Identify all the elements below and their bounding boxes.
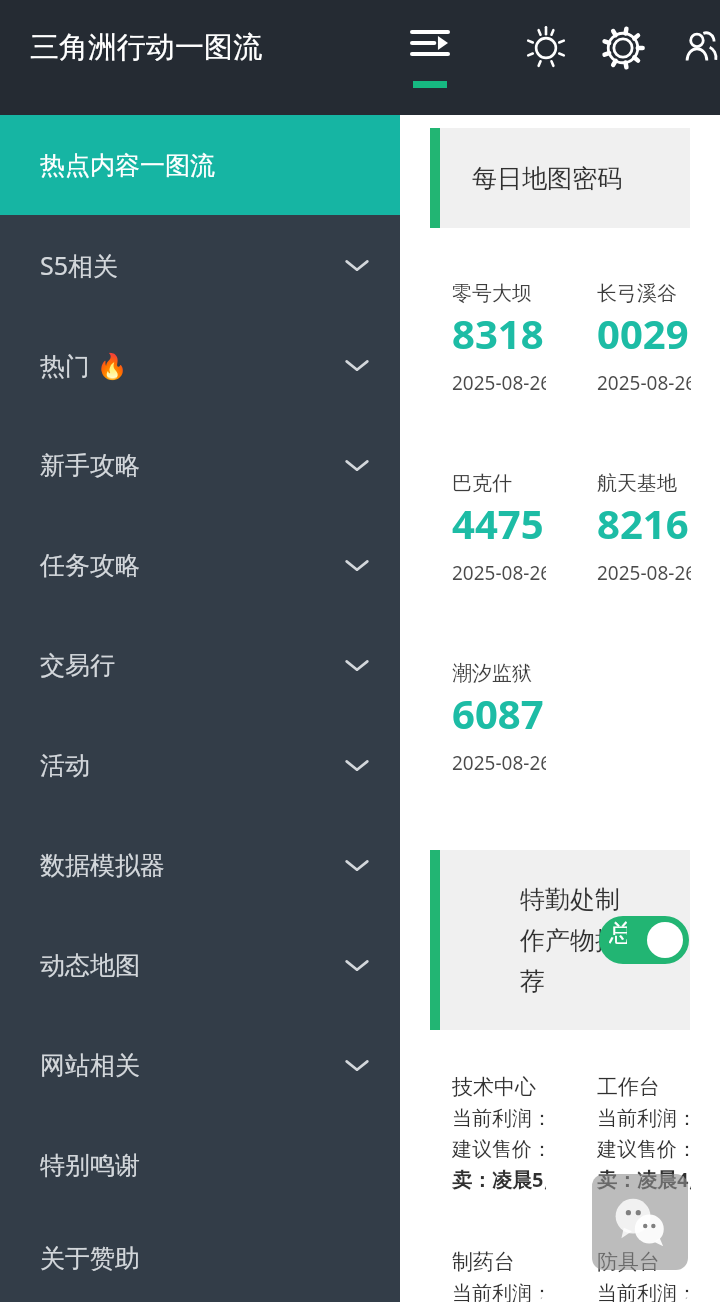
- staticText: 防具台: [597, 1249, 660, 1275]
- button[interactable]: 关于赞助: [0, 1215, 400, 1302]
- button[interactable]: Menu: [400, 18, 460, 98]
- staticText: 当前利润：2: [597, 1104, 691, 1131]
- staticText: 总利润: [609, 918, 627, 964]
- staticText: 2025-08-26: [597, 370, 691, 396]
- button[interactable]: 动态地图: [0, 915, 400, 1015]
- button[interactable]: 数据模拟器: [0, 815, 400, 915]
- staticText: 热门 🔥: [40, 348, 344, 382]
- staticText: 航天基地: [597, 471, 677, 496]
- button[interactable]: 防具台: [575, 1235, 691, 1302]
- button[interactable]: 网站相关: [0, 1015, 400, 1115]
- button[interactable]: 新手攻略: [0, 415, 400, 515]
- staticText: 任务攻略: [40, 550, 344, 581]
- staticText: 三角洲行动一图流: [30, 29, 262, 66]
- button[interactable]: WeChat: [592, 1174, 688, 1270]
- button[interactable]: 制药台: [430, 1235, 546, 1302]
- button[interactable]: 每日地图密码: [430, 128, 690, 228]
- staticText: 每日地图密码: [472, 163, 622, 194]
- staticText: 特别鸣谢: [40, 1150, 370, 1181]
- staticText: 动态地图: [40, 950, 344, 981]
- staticText: 新手攻略: [40, 450, 344, 481]
- staticText: 网站相关: [40, 1050, 344, 1081]
- staticText: 4475: [452, 496, 544, 550]
- button[interactable]: 热门 🔥: [0, 315, 400, 415]
- staticText: 卖：凌晨4点: [597, 1166, 691, 1193]
- staticText: 6087: [452, 686, 544, 740]
- staticText: 8318: [452, 306, 544, 360]
- staticText: 建议售价：10: [452, 1135, 546, 1162]
- staticText: 长弓溪谷: [597, 281, 677, 306]
- button[interactable]: 任务攻略: [0, 515, 400, 615]
- button[interactable]: 特勤处制作产物推荐: [430, 850, 690, 1030]
- button[interactable]: 特别鸣谢: [0, 1115, 400, 1215]
- staticText: S5相关: [40, 248, 344, 282]
- staticText: 活动: [40, 750, 344, 781]
- button[interactable]: 航天基地: [575, 453, 691, 608]
- staticText: 巴克什: [452, 471, 512, 496]
- staticText: 交易行: [40, 650, 344, 681]
- staticText: 8216: [597, 496, 689, 550]
- staticText: 当前利润：16: [597, 1279, 691, 1302]
- staticText: 当前利润：16: [452, 1279, 546, 1302]
- button[interactable]: Account: [674, 22, 720, 74]
- staticText: 2025-08-26: [452, 560, 546, 586]
- button[interactable]: 交易行: [0, 615, 400, 715]
- staticText: 特勤处制作产物推荐: [520, 884, 625, 997]
- button[interactable]: 活动: [0, 715, 400, 815]
- staticText: 技术中心: [452, 1074, 536, 1100]
- button[interactable]: Settings: [597, 22, 649, 74]
- staticText: 2025-08-26: [452, 750, 546, 776]
- staticText: 热点内容一图流: [40, 150, 370, 181]
- button[interactable]: Brightness: [520, 22, 572, 74]
- button[interactable]: 总利润: [599, 916, 689, 964]
- button[interactable]: 巴克什: [430, 453, 546, 608]
- button[interactable]: 潮汐监狱: [430, 643, 546, 798]
- staticText: 2025-08-26: [452, 370, 546, 396]
- button[interactable]: 热点内容一图流: [0, 115, 400, 215]
- staticText: 卖：凌晨5点: [452, 1166, 546, 1193]
- button[interactable]: 长弓溪谷: [575, 263, 691, 418]
- staticText: 当前利润：4: [452, 1104, 546, 1131]
- button[interactable]: S5相关: [0, 215, 400, 315]
- button[interactable]: 技术中心: [430, 1060, 546, 1203]
- button[interactable]: 工作台: [575, 1060, 691, 1203]
- staticText: 工作台: [597, 1074, 660, 1100]
- staticText: 0029: [597, 306, 689, 360]
- staticText: 零号大坝: [452, 281, 532, 306]
- button[interactable]: 零号大坝: [430, 263, 546, 418]
- staticText: 关于赞助: [40, 1243, 370, 1274]
- staticText: 制药台: [452, 1249, 515, 1275]
- staticText: 潮汐监狱: [452, 661, 532, 686]
- staticText: 建议售价：4: [597, 1135, 691, 1162]
- staticText: 2025-08-26: [597, 560, 691, 586]
- staticText: 数据模拟器: [40, 850, 344, 881]
